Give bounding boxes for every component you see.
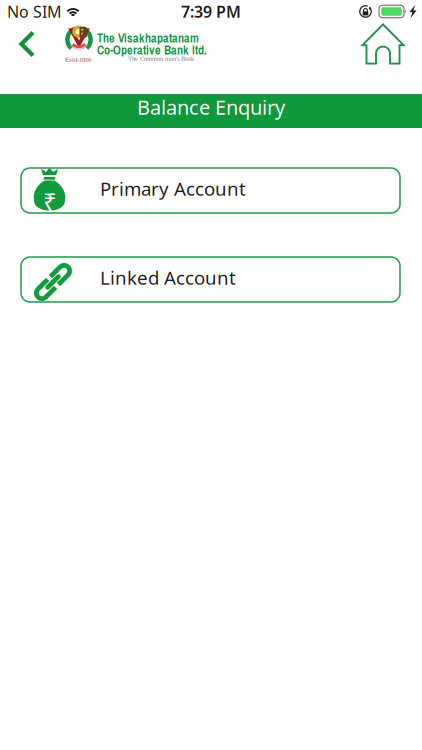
staticText: Estd-1916: [65, 55, 91, 63]
staticText: No SIM: [7, 1, 62, 22]
staticText: The Common man's Bank: [128, 55, 194, 62]
staticText: Balance Enquiry: [137, 94, 285, 120]
staticText: Co-Operative Bank ltd.: [97, 42, 207, 58]
button[interactable]: Back: [9, 22, 45, 66]
button[interactable]: Linked Account: [21, 257, 400, 302]
button[interactable]: Home: [356, 18, 410, 70]
staticText: B: [78, 21, 87, 43]
staticText: 7:39 PM: [181, 1, 241, 22]
button[interactable]: ₹: [21, 168, 400, 213]
staticText: The Visakhapatanam: [97, 30, 199, 46]
staticText: Linked Account: [100, 265, 236, 290]
staticText: ₹: [43, 186, 57, 217]
staticText: Primary Account: [100, 176, 246, 201]
